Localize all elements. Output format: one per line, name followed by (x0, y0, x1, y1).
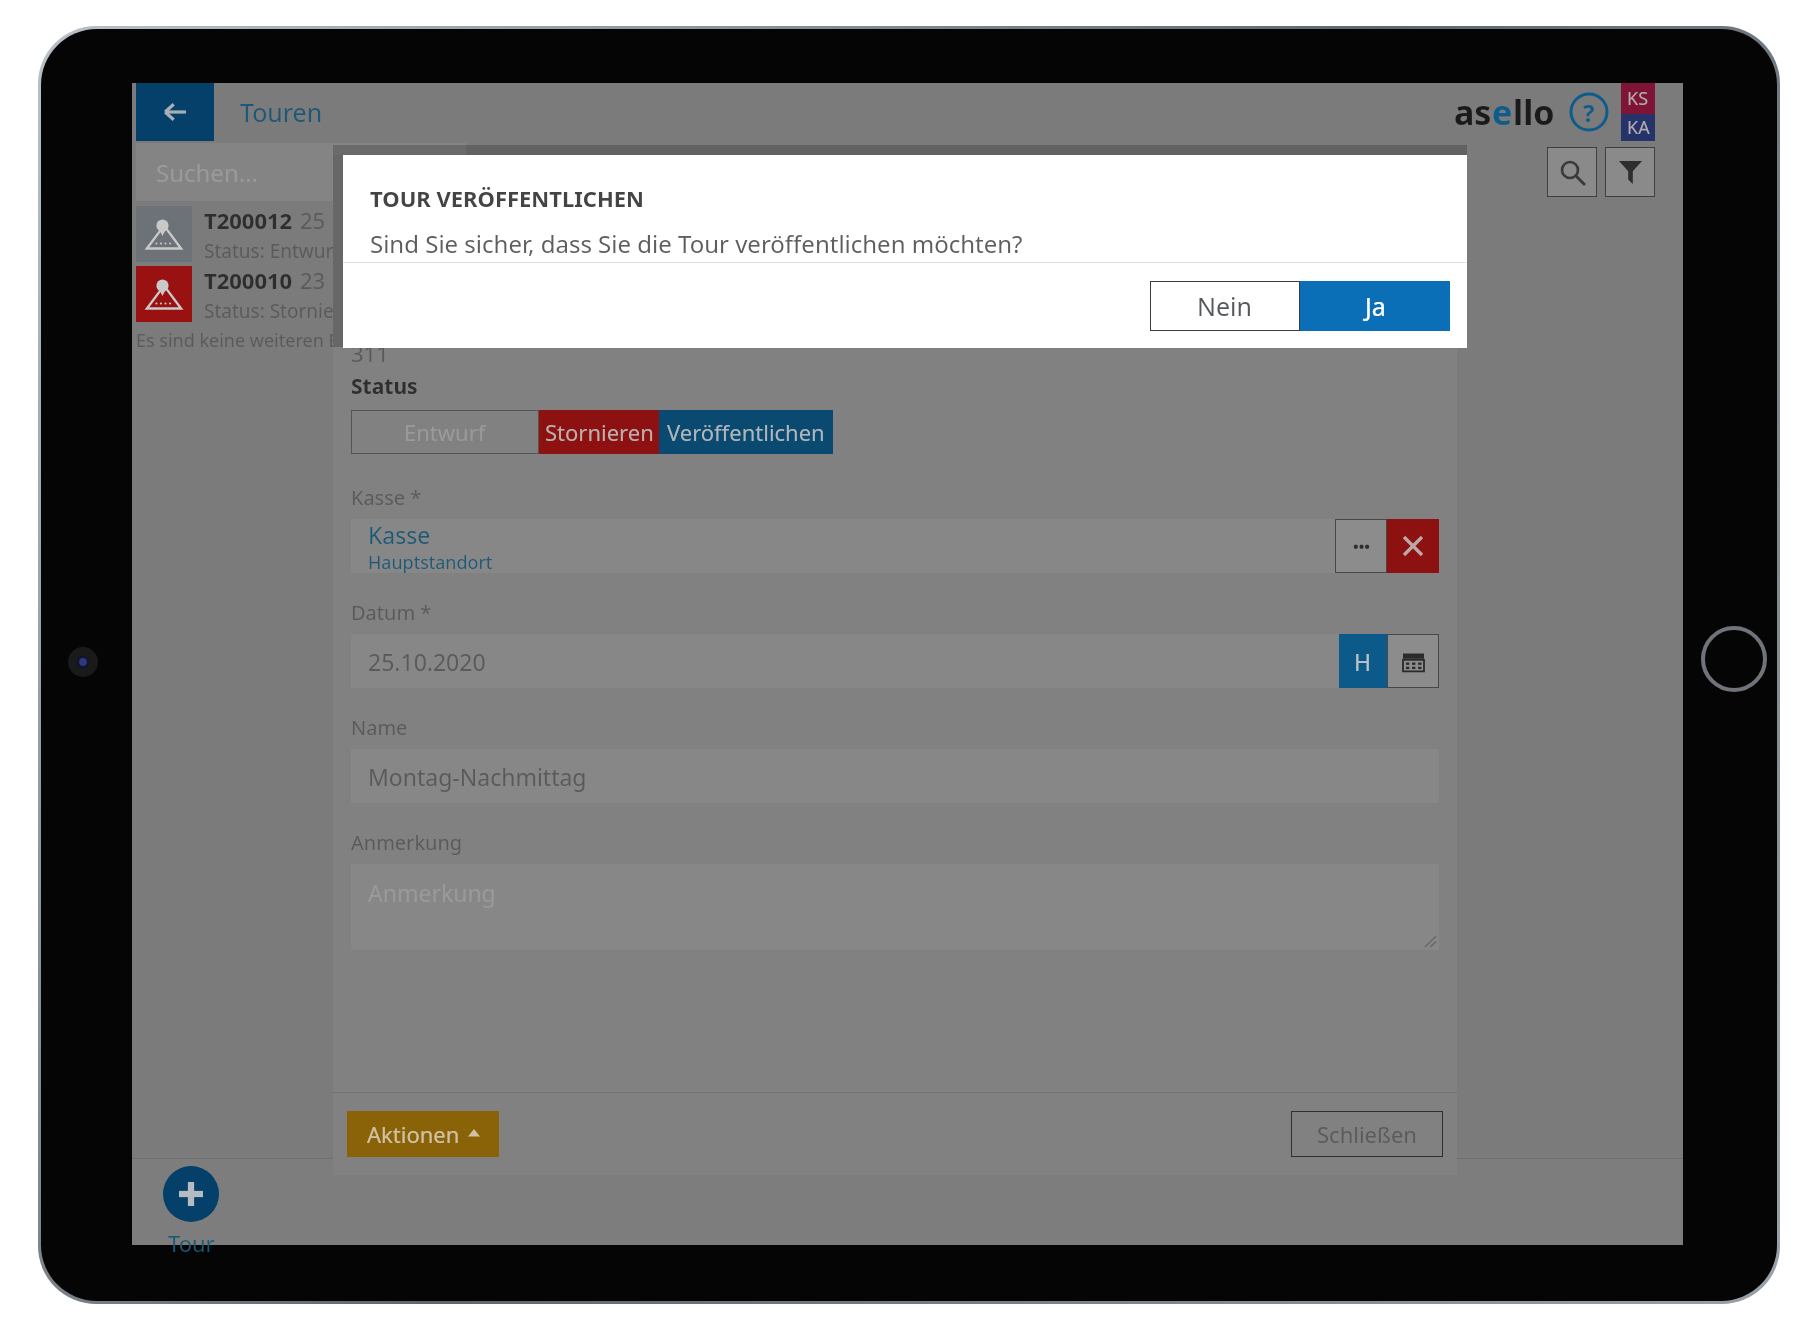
button[interactable]: Nein (1150, 281, 1300, 331)
staticText: Touren (240, 95, 323, 129)
staticText: 25 (300, 205, 326, 235)
staticText: ••• (1353, 536, 1370, 556)
staticText: Stornieren (545, 417, 654, 447)
button[interactable]: 25.10.2020 (351, 634, 1339, 688)
staticText: T200012 (204, 205, 293, 235)
staticText: Anmerkung (368, 877, 496, 908)
button[interactable]: Veröffentlichen (659, 410, 833, 454)
staticText: Entwurf (404, 417, 486, 447)
button[interactable]: Filter (1605, 147, 1655, 197)
button[interactable]: KS (1621, 83, 1655, 114)
staticText: Kasse (368, 519, 431, 550)
button[interactable]: Tour (136, 1166, 246, 1253)
staticText: Montag-Nachmittag (368, 761, 587, 792)
button[interactable]: Löschen (1387, 519, 1439, 573)
button[interactable]: Schließen (1291, 1111, 1443, 1157)
button[interactable]: Montag-Nachmittag (351, 749, 1439, 803)
staticText: Anmerkung (351, 829, 463, 856)
button[interactable]: Aktionen (347, 1111, 499, 1157)
button[interactable]: Kalender (1387, 634, 1439, 688)
button[interactable]: Stornieren (539, 410, 659, 454)
staticText: Nein (1197, 289, 1253, 323)
button[interactable]: Kasse (351, 519, 1335, 573)
staticText: Name (351, 714, 408, 741)
staticText: e (1492, 89, 1513, 135)
staticText: 25.10.2020 (368, 646, 486, 677)
staticText: Schließen (1317, 1119, 1417, 1149)
staticText: H (1354, 646, 1372, 677)
staticText: Status (351, 372, 418, 401)
button[interactable]: T200010 (136, 265, 1687, 323)
staticText: Sind Sie sicher, dass Sie die Tour veröf… (370, 227, 1023, 260)
button[interactable]: H (1339, 634, 1387, 688)
staticText: ? (1583, 96, 1595, 129)
staticText: Es sind keine weiteren Einträge vorhande… (136, 328, 496, 353)
staticText: Veröffentlichen (667, 417, 825, 447)
staticText: TOUR VERÖFFENTLICHEN (370, 183, 644, 213)
button[interactable]: T200012 (136, 205, 1687, 263)
staticText: 311 (351, 338, 389, 368)
staticText: Kasse * (351, 484, 422, 511)
staticText: Suchen... (156, 156, 259, 189)
staticText: Status: Entwurf (204, 238, 340, 263)
button[interactable]: Suchen... (136, 143, 466, 201)
staticText: KA (1627, 115, 1650, 140)
button[interactable]: Ja (1300, 281, 1450, 331)
button[interactable]: Entwurf (351, 410, 539, 454)
button[interactable]: Hilfe (1569, 92, 1609, 132)
button[interactable]: KA (1621, 114, 1655, 141)
staticText: Tour (168, 1228, 215, 1253)
staticText: Datum * (351, 599, 432, 626)
button[interactable]: Suchen (1547, 147, 1597, 197)
button[interactable]: Zurück (136, 83, 214, 141)
staticText: Hauptstandort (368, 550, 493, 573)
staticText: llo (1513, 89, 1555, 135)
staticText: Ja (1365, 289, 1386, 323)
staticText: Status: Storniert (204, 298, 349, 323)
staticText: T200010 (204, 265, 293, 295)
button[interactable]: Auswählen (1335, 519, 1387, 573)
staticText: 23 (300, 265, 326, 295)
staticText: Aktionen (367, 1119, 460, 1149)
staticText: as (1454, 89, 1492, 135)
staticText: KS (1627, 86, 1649, 111)
